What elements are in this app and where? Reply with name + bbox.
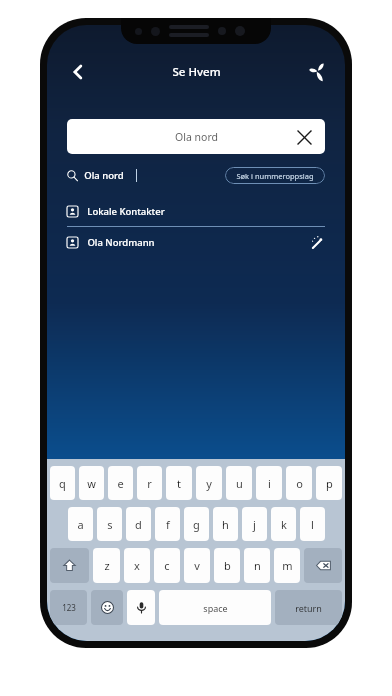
button[interactable]: Lokale Kontakter (47, 196, 345, 226)
button[interactable]: o (286, 466, 312, 500)
button[interactable]: 123 (50, 590, 87, 625)
button[interactable]: Telenor menu (303, 57, 333, 87)
button[interactable]: s (97, 507, 122, 541)
button[interactable]: Edit (307, 233, 325, 251)
staticText: y (206, 476, 212, 491)
button[interactable]: Emoji (91, 590, 123, 625)
button[interactable]: Søk i nummeroppslag (225, 167, 325, 184)
staticText: x (134, 558, 140, 573)
staticText: return (295, 602, 322, 614)
staticText: d (135, 517, 142, 532)
button[interactable]: space (159, 590, 271, 625)
button[interactable]: Ola nord (67, 169, 124, 182)
button[interactable]: Ola Nordmann (47, 227, 345, 257)
staticText: k (281, 517, 287, 532)
button[interactable]: c (154, 548, 180, 583)
button[interactable]: Back (61, 55, 95, 89)
button[interactable]: j (242, 507, 267, 541)
staticText: w (87, 476, 96, 491)
staticText: a (77, 517, 84, 532)
staticText: z (104, 558, 110, 573)
button[interactable]: i (256, 466, 282, 500)
button[interactable]: u (226, 466, 252, 500)
button[interactable]: r (137, 466, 162, 500)
button[interactable]: return (275, 590, 342, 625)
button[interactable]: y (196, 466, 222, 500)
button[interactable]: t (166, 466, 192, 500)
staticText: v (194, 558, 200, 573)
staticText: space (203, 602, 228, 614)
button[interactable]: d (126, 507, 151, 541)
button[interactable]: f (155, 507, 180, 541)
staticText: r (147, 476, 152, 491)
staticText: n (254, 558, 261, 573)
button[interactable]: Shift (50, 548, 89, 583)
staticText: e (117, 476, 124, 491)
staticText: p (326, 476, 333, 491)
button[interactable]: Backspace (304, 548, 342, 583)
staticText: s (107, 517, 113, 532)
staticText: Ola nord (84, 169, 124, 182)
button[interactable]: b (214, 548, 240, 583)
button[interactable]: l (300, 507, 325, 541)
button[interactable]: Dictation (127, 590, 155, 625)
button[interactable]: Ola nord (67, 119, 325, 154)
staticText: j (253, 517, 256, 532)
staticText: u (236, 476, 243, 491)
staticText: g (193, 517, 200, 532)
staticText: Lokale Kontakter (87, 205, 165, 218)
staticText: Se Hvem (172, 64, 221, 80)
button[interactable]: m (274, 548, 300, 583)
button[interactable]: v (184, 548, 210, 583)
staticText: l (311, 517, 314, 532)
button[interactable]: e (108, 466, 133, 500)
staticText: q (59, 476, 66, 491)
button[interactable]: w (79, 466, 104, 500)
button[interactable]: h (213, 507, 238, 541)
button[interactable]: k (271, 507, 296, 541)
button[interactable]: z (93, 548, 120, 583)
staticText: o (296, 476, 303, 491)
staticText: 123 (62, 602, 76, 613)
button[interactable]: Clear search (293, 126, 315, 148)
staticText: m (282, 558, 293, 573)
staticText: i (268, 476, 271, 491)
button[interactable]: p (316, 466, 342, 500)
button[interactable]: x (124, 548, 150, 583)
staticText: t (177, 476, 181, 491)
button[interactable]: n (244, 548, 270, 583)
staticText: h (222, 517, 229, 532)
staticText: c (164, 558, 170, 573)
button[interactable]: a (68, 507, 93, 541)
staticText: b (224, 558, 231, 573)
staticText: Ola nord (175, 130, 218, 144)
staticText: Ola Nordmann (87, 236, 155, 249)
button[interactable]: g (184, 507, 209, 541)
button[interactable]: q (50, 466, 75, 500)
staticText: f (166, 517, 170, 532)
staticText: Søk i nummeroppslag (236, 171, 314, 181)
